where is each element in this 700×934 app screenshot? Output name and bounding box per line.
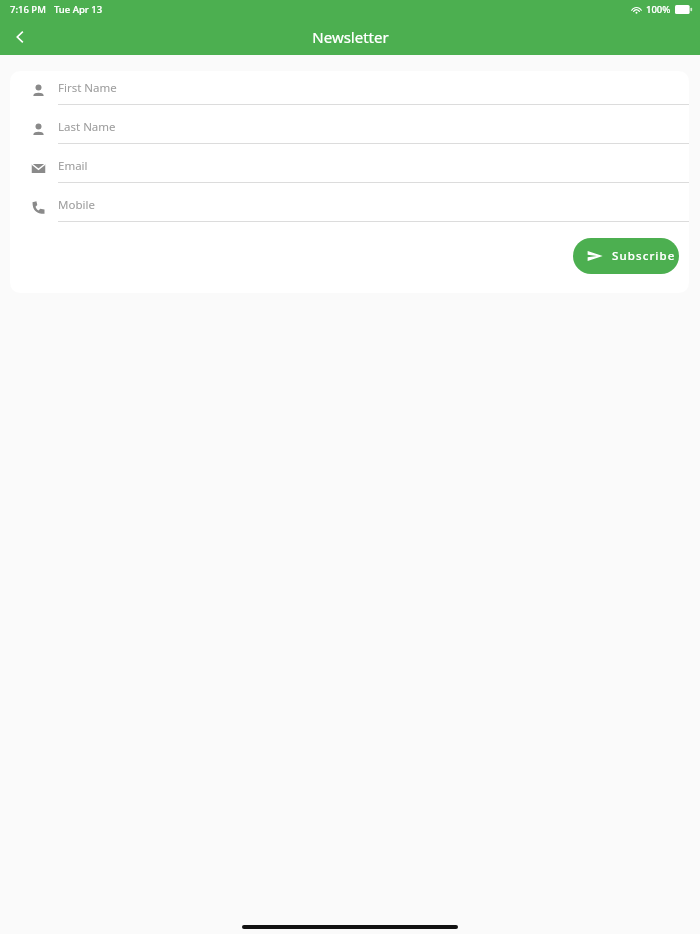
staticText: Newsletter [312,27,389,47]
staticText: First Name [58,80,117,96]
button[interactable]: Email [10,149,689,188]
staticText: Email [58,158,88,174]
button[interactable]: Subscribe [573,238,679,274]
staticText: Subscribe [612,248,676,264]
staticText: 7:16 PM [10,3,46,16]
staticText: Mobile [58,197,95,213]
staticText: Last Name [58,119,116,135]
button[interactable]: Last Name [10,110,689,149]
button[interactable]: Back [0,18,40,55]
staticText: 100% [646,3,671,16]
button[interactable]: First Name [10,71,689,110]
button[interactable]: Mobile [10,188,689,227]
staticText: Tue Apr 13 [54,3,103,16]
